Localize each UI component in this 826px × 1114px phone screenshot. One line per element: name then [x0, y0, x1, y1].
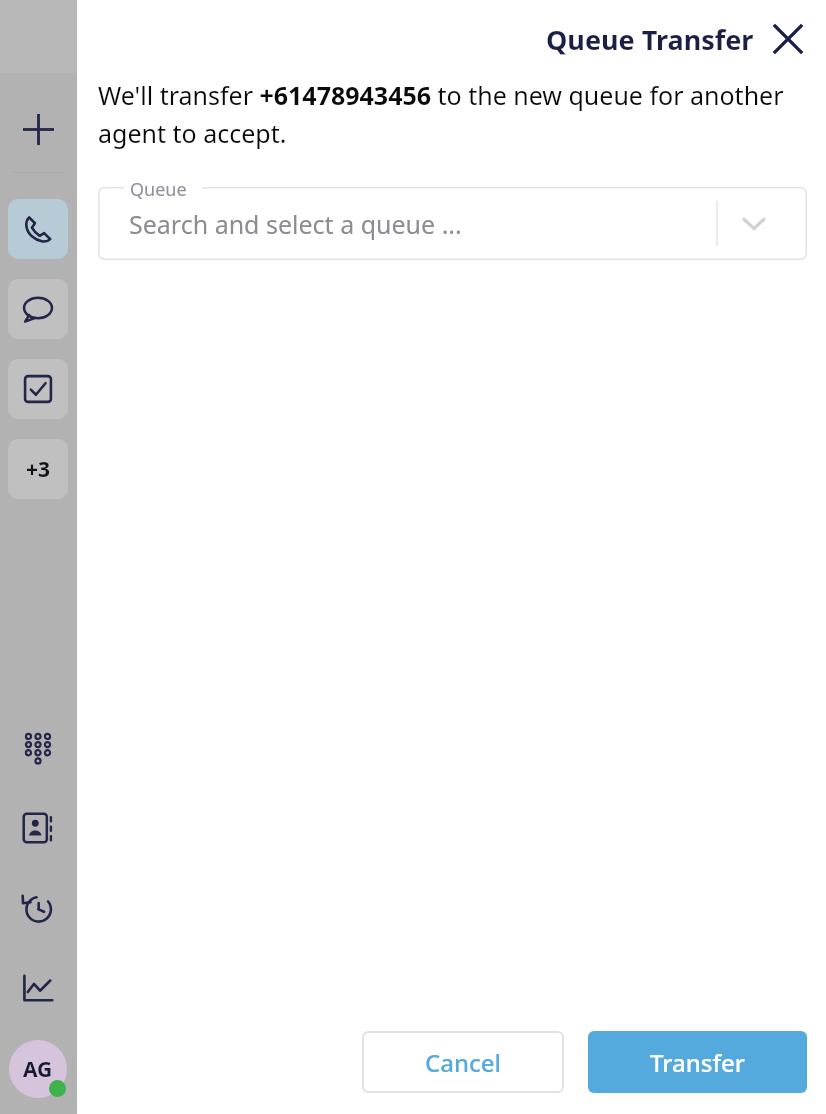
staticText: Queue Transfer — [546, 21, 754, 58]
button[interactable]: Analytics — [8, 958, 68, 1018]
button[interactable]: Calls — [8, 199, 68, 259]
button[interactable]: Messages — [8, 279, 68, 339]
button[interactable]: Cancel — [362, 1031, 564, 1093]
staticText: Cancel — [425, 1046, 502, 1079]
button[interactable]: Close — [767, 18, 809, 60]
button[interactable]: Tasks — [8, 359, 68, 419]
button[interactable]: Transfer — [588, 1031, 807, 1093]
staticText: AG — [23, 1055, 53, 1084]
button[interactable]: New — [8, 99, 68, 159]
staticText: We'll transfer +61478943456 to the new q… — [98, 78, 800, 150]
button[interactable]: History — [8, 878, 68, 938]
button[interactable]: Dialpad — [8, 718, 68, 778]
button[interactable]: Contacts — [8, 798, 68, 858]
staticText: Transfer — [650, 1046, 745, 1079]
button[interactable]: Three more channels — [8, 439, 68, 499]
staticText: Queue — [130, 177, 187, 202]
button[interactable]: Profile AG — [9, 1040, 67, 1098]
staticText: Search and select a queue ... — [129, 207, 462, 241]
staticText: +3 — [26, 455, 51, 484]
